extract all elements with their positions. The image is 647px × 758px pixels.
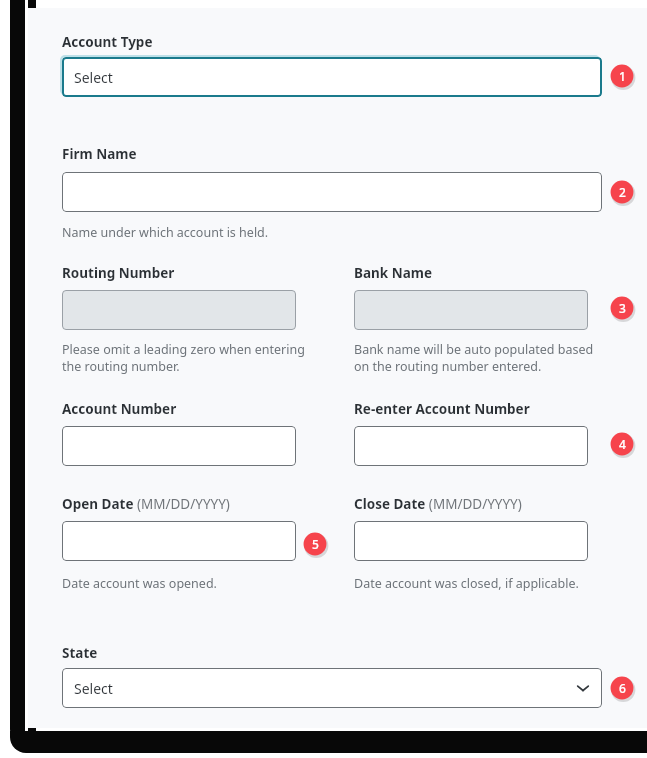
staticText: Bank name will be auto populated based o… [354,341,596,375]
button[interactable] [62,172,602,212]
staticText: Close Date (MM/DD/YYYY) [354,495,522,513]
staticText: Routing Number [62,264,175,282]
button[interactable] [62,290,296,330]
button[interactable] [354,290,588,330]
staticText: Select [74,679,113,698]
button[interactable] [62,521,296,561]
staticText: 4 [619,436,626,452]
staticText: Please omit a leading zero when entering… [62,341,312,375]
button[interactable] [354,521,588,561]
staticText: Open Date (MM/DD/YYYY) [62,495,230,513]
button[interactable] [354,426,588,466]
staticText: Re-enter Account Number [354,400,530,418]
staticText: Firm Name [62,145,137,163]
staticText: Date account was opened. [62,575,217,592]
staticText: Bank Name [354,264,433,282]
staticText: Select [74,68,113,87]
staticText: Name under which account is held. [62,224,269,241]
button[interactable] [62,426,296,466]
staticText: 6 [619,680,626,696]
staticText: Account Number [62,400,177,418]
staticText: 5 [312,536,319,552]
staticText: 2 [619,184,626,200]
staticText: 1 [619,68,626,84]
staticText: Account Type [62,33,153,51]
staticText: Date account was closed, if applicable. [354,575,579,592]
staticText: State [62,644,98,662]
button[interactable]: Select [62,57,602,97]
button[interactable]: Select [62,668,602,708]
staticText: 3 [619,300,626,316]
